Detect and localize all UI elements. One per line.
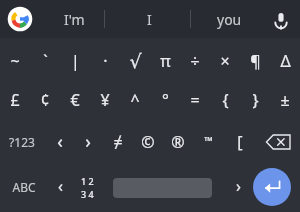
button[interactable]: © <box>133 128 163 156</box>
button[interactable]: Numbers <box>72 173 102 201</box>
button[interactable]: I <box>120 0 178 38</box>
button[interactable]: ` <box>30 47 60 75</box>
button[interactable]: ± <box>270 86 300 114</box>
button[interactable]: ^ <box>120 86 150 114</box>
staticText: © <box>141 131 155 153</box>
button[interactable]: = <box>180 86 210 114</box>
button[interactable]: } <box>240 86 270 114</box>
button[interactable]: √ <box>120 47 150 75</box>
staticText: ‹ <box>58 175 63 197</box>
staticText: π <box>160 50 171 72</box>
button[interactable]: £ <box>0 86 30 114</box>
staticText: I'm <box>64 10 85 29</box>
staticText: ™ <box>204 133 213 148</box>
staticText: ~ <box>10 50 20 72</box>
staticText: √ <box>129 50 142 72</box>
staticText: ÷ <box>190 50 200 72</box>
staticText: | <box>71 50 80 72</box>
staticText: € <box>70 89 80 111</box>
button[interactable]: Backspace <box>262 128 294 156</box>
staticText: ^ <box>130 89 140 111</box>
staticText: Δ <box>280 50 291 72</box>
button[interactable]: π <box>150 47 180 75</box>
staticText: ¥ <box>100 89 110 111</box>
button[interactable]: ÷ <box>180 47 210 75</box>
staticText: ¢ <box>40 89 50 111</box>
button[interactable]: › <box>73 127 103 155</box>
staticText: ¶ <box>250 50 261 72</box>
button[interactable]: ~ <box>0 47 30 75</box>
staticText: ± <box>280 89 290 111</box>
staticText: › <box>236 175 241 197</box>
staticText: ‹ <box>57 129 63 154</box>
staticText: [ <box>237 131 243 153</box>
staticText: you <box>217 10 242 29</box>
button[interactable]: ABC <box>9 173 39 201</box>
staticText: 3 4 <box>81 188 94 200</box>
staticText: ` <box>43 50 48 72</box>
button[interactable]: Voice input <box>268 7 294 33</box>
button[interactable]: ≠ <box>103 128 133 156</box>
button[interactable]: [ <box>225 128 255 156</box>
button[interactable]: › <box>223 172 253 200</box>
button[interactable]: { <box>210 86 240 114</box>
button[interactable]: ¥ <box>90 86 120 114</box>
button[interactable]: ‹ <box>45 127 75 155</box>
staticText: = <box>190 89 200 111</box>
staticText: ABC <box>12 179 36 195</box>
staticText: ® <box>171 131 185 153</box>
button[interactable]: Google <box>5 4 35 34</box>
button[interactable]: Enter <box>253 168 291 206</box>
staticText: · <box>103 50 108 72</box>
staticText: I <box>147 10 152 29</box>
staticText: ≠ <box>113 131 123 153</box>
staticText: } <box>252 89 259 111</box>
staticText: × <box>220 50 230 72</box>
button[interactable]: you <box>200 0 258 38</box>
staticText: › <box>85 129 91 154</box>
button[interactable]: ¶ <box>240 47 270 75</box>
button[interactable]: ‹ <box>45 172 75 200</box>
staticText: 1 2 <box>81 175 94 187</box>
button[interactable]: × <box>210 47 240 75</box>
button[interactable]: · <box>90 47 120 75</box>
button[interactable]: Δ <box>270 47 300 75</box>
button[interactable]: ° <box>150 86 180 114</box>
button[interactable]: I'm <box>45 0 103 38</box>
button[interactable]: € <box>60 86 90 114</box>
button[interactable]: ® <box>163 128 193 156</box>
button[interactable]: ?123 <box>7 128 37 156</box>
staticText: ?123 <box>9 134 35 150</box>
staticText: { <box>222 89 229 111</box>
staticText: ° <box>162 89 169 111</box>
button[interactable]: | <box>60 47 90 75</box>
button[interactable]: ™ <box>193 126 223 154</box>
staticText: £ <box>10 89 20 111</box>
button[interactable]: ¢ <box>30 86 60 114</box>
